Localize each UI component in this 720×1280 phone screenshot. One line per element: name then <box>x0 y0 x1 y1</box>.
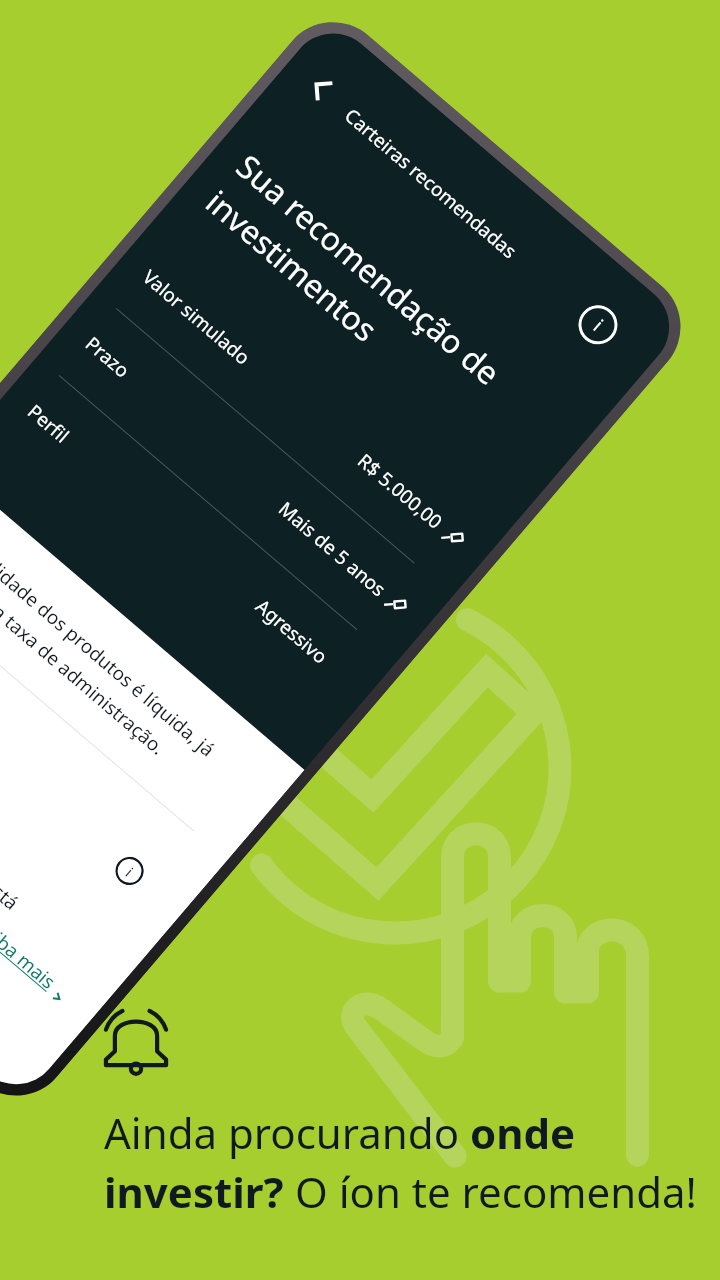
staticText: O valor investido nos produtos está <box>0 690 24 916</box>
staticText: Carteiras recomendadas <box>339 103 522 264</box>
staticText: Prazo <box>80 331 136 384</box>
button[interactable]: Valor simulado <box>129 255 477 562</box>
staticText: O íon te recomenda! <box>284 1163 697 1220</box>
staticText: Sua recomendação de investimentos <box>198 145 510 430</box>
staticText: A rentabilidade dos produtos é líquida, … <box>0 505 221 786</box>
staticText: R$ 5.000,00 <box>352 448 448 535</box>
staticText: Saiba mais <box>0 913 61 995</box>
staticText: Perfil <box>22 399 75 449</box>
staticText: Ainda procurando <box>104 1104 470 1161</box>
staticText: Mais de 5 anos <box>273 496 391 602</box>
staticText: i <box>588 314 609 337</box>
staticText: onde <box>470 1104 576 1161</box>
staticText: Valor simulado <box>137 264 256 371</box>
button[interactable]: Perfil <box>14 389 362 697</box>
staticText: Agressivo <box>250 593 333 670</box>
button[interactable]: Informações <box>570 297 626 353</box>
button[interactable]: Prazo <box>72 322 420 629</box>
button[interactable]: Informações <box>109 850 150 891</box>
staticText: investir? <box>104 1163 284 1220</box>
staticText: i <box>122 863 138 880</box>
button[interactable]: Saiba mais <box>0 913 75 1006</box>
button[interactable]: Voltar <box>302 69 339 106</box>
